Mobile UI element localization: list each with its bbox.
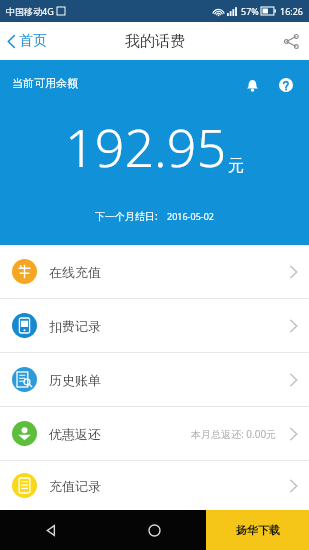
button[interactable]: 首页	[0, 26, 55, 56]
button[interactable]: Recents	[206, 510, 309, 550]
staticText: 中国移动4G	[6, 5, 54, 17]
staticText: 充值记录	[49, 478, 101, 494]
staticText: 扬华下载	[236, 523, 280, 537]
button[interactable]: Notifications	[240, 73, 265, 98]
button[interactable]: 优惠返还	[0, 407, 309, 460]
button[interactable]: 扣费记录	[0, 299, 309, 352]
button[interactable]: 充值记录	[0, 461, 309, 510]
staticText: 本月总返还: 0.00元	[191, 427, 277, 441]
staticText: 192.95	[65, 111, 227, 182]
staticText: 扣费记录	[49, 318, 101, 334]
button[interactable]: Home	[103, 510, 206, 550]
staticText: 优惠返还	[49, 426, 101, 442]
staticText: 57%	[241, 5, 259, 17]
staticText: 下一个月结日:	[95, 209, 158, 223]
staticText: 元	[228, 156, 244, 176]
staticText: 2016-05-02	[167, 210, 214, 222]
button[interactable]: Help	[273, 72, 299, 98]
staticText: 我的话费	[125, 32, 185, 51]
staticText: 历史账单	[49, 372, 101, 388]
button[interactable]: 历史账单	[0, 353, 309, 406]
button[interactable]: Back	[0, 510, 103, 550]
staticText: 在线充值	[49, 264, 101, 280]
staticText: 首页	[19, 32, 47, 50]
staticText: 当前可用余额	[12, 76, 78, 90]
button[interactable]: Share	[274, 26, 309, 57]
staticText: 16:26	[280, 5, 304, 17]
button[interactable]: 在线充值	[0, 245, 309, 298]
